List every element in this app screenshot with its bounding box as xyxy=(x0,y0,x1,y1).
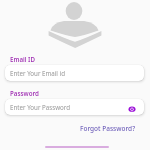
button[interactable] xyxy=(45,146,109,148)
staticText: Enter Your Email id xyxy=(10,69,65,77)
button[interactable] xyxy=(128,104,136,112)
button[interactable]: Enter Your Password xyxy=(5,99,144,115)
button[interactable]: Enter Your Email id xyxy=(5,65,144,81)
staticText: Email ID xyxy=(10,55,35,63)
staticText: Password xyxy=(10,89,39,97)
staticText: Enter Your Password xyxy=(10,103,71,111)
button[interactable]: Forgot Password? xyxy=(80,124,136,133)
